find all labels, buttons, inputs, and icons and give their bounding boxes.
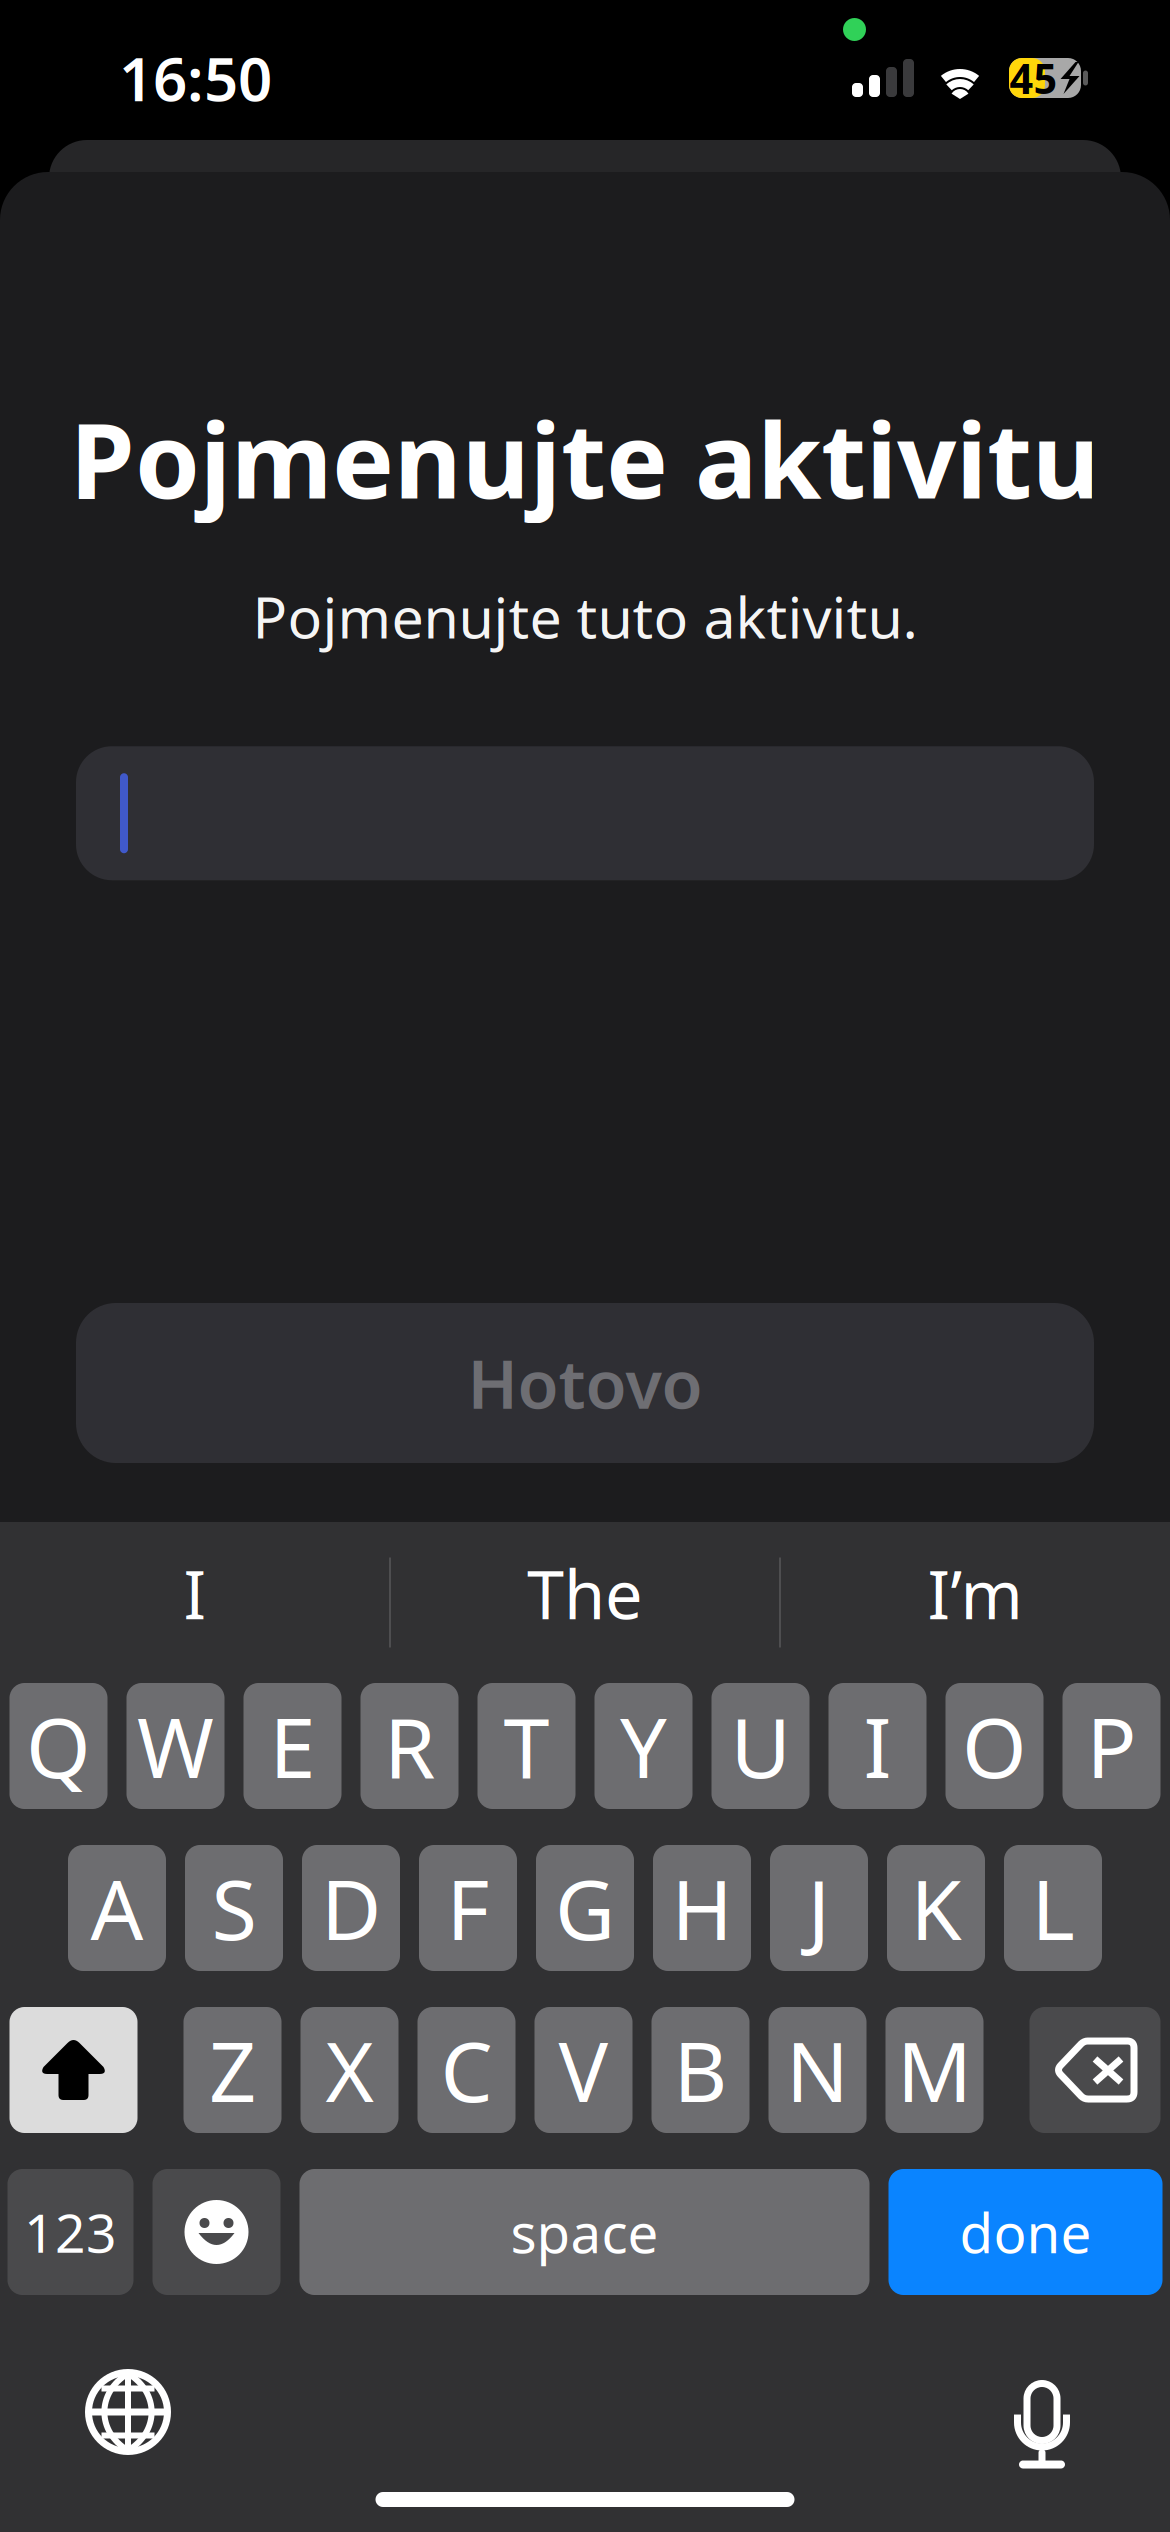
staticText: S: [211, 1853, 256, 1963]
staticText: Y: [620, 1691, 667, 1801]
button[interactable]: G: [536, 1845, 634, 1971]
staticText: Hotovo: [467, 1339, 702, 1427]
staticText: C: [440, 2015, 492, 2125]
button[interactable]: M: [885, 2007, 983, 2133]
button[interactable]: E: [243, 1683, 341, 1809]
button[interactable]: R: [360, 1683, 458, 1809]
button[interactable]: Activity name: [0, 746, 1170, 880]
button[interactable]: J: [770, 1845, 868, 1971]
staticText: done: [959, 2196, 1091, 2268]
staticText: N: [786, 2015, 849, 2125]
button[interactable]: X: [300, 2007, 398, 2133]
button[interactable]: C: [417, 2007, 515, 2133]
button[interactable]: done: [888, 2169, 1162, 2295]
staticText: P: [1086, 1691, 1136, 1801]
staticText: space: [510, 2196, 658, 2268]
button[interactable]: The: [390, 1522, 780, 1665]
staticText: I: [863, 1691, 891, 1801]
button[interactable]: F: [419, 1845, 517, 1971]
button[interactable]: H: [653, 1845, 751, 1971]
staticText: W: [137, 1691, 214, 1801]
staticText: F: [446, 1853, 489, 1963]
staticText: R: [384, 1691, 435, 1801]
staticText: J: [807, 1853, 830, 1963]
button[interactable]: A: [68, 1845, 166, 1971]
button[interactable]: L: [1004, 1845, 1102, 1971]
staticText: E: [269, 1691, 315, 1801]
staticText: 45: [1009, 51, 1057, 105]
staticText: The: [527, 1549, 643, 1638]
staticText: 123: [24, 2197, 117, 2267]
button[interactable]: Z: [183, 2007, 281, 2133]
staticText: I: [183, 1549, 206, 1638]
button[interactable]: I: [828, 1683, 926, 1809]
staticText: O: [962, 1691, 1027, 1801]
staticText: V: [558, 2015, 608, 2125]
button[interactable]: Y: [594, 1683, 692, 1809]
staticText: A: [90, 1853, 143, 1963]
staticText: L: [1031, 1853, 1074, 1963]
button[interactable]: U: [711, 1683, 809, 1809]
button[interactable]: D: [302, 1845, 400, 1971]
button[interactable]: Emoji: [152, 2169, 280, 2295]
button[interactable]: S: [185, 1845, 283, 1971]
staticText: Pojmenujte aktivitu: [70, 389, 1100, 527]
button[interactable]: W: [126, 1683, 224, 1809]
button[interactable]: space: [299, 2169, 869, 2295]
button[interactable]: I’m: [780, 1522, 1170, 1665]
staticText: Pojmenujte tuto aktivitu.: [252, 578, 917, 654]
button[interactable]: O: [945, 1683, 1043, 1809]
staticText: Q: [26, 1691, 91, 1801]
button[interactable]: P: [1062, 1683, 1160, 1809]
staticText: K: [910, 1853, 961, 1963]
staticText: I’m: [927, 1549, 1022, 1638]
staticText: X: [325, 2015, 373, 2125]
button[interactable]: Q: [9, 1683, 107, 1809]
button[interactable]: K: [887, 1845, 985, 1971]
staticText: 16:50: [119, 38, 272, 118]
staticText: D: [321, 1853, 381, 1963]
staticText: Z: [209, 2015, 256, 2125]
button[interactable]: Delete: [1029, 2007, 1160, 2133]
button[interactable]: Shift: [9, 2007, 137, 2133]
staticText: U: [730, 1691, 790, 1801]
staticText: B: [673, 2015, 727, 2125]
button[interactable]: Change keyboard: [73, 2357, 183, 2467]
button[interactable]: Dictate: [987, 2357, 1097, 2467]
button[interactable]: B: [651, 2007, 749, 2133]
button[interactable]: 123: [7, 2169, 133, 2295]
staticText: M: [897, 2015, 972, 2125]
staticText: G: [555, 1853, 615, 1963]
button[interactable]: V: [534, 2007, 632, 2133]
staticText: H: [671, 1853, 732, 1963]
button[interactable]: T: [477, 1683, 575, 1809]
button[interactable]: Hotovo: [0, 1303, 1170, 1463]
staticText: T: [503, 1691, 549, 1801]
button[interactable]: I: [0, 1522, 390, 1665]
button[interactable]: N: [768, 2007, 866, 2133]
